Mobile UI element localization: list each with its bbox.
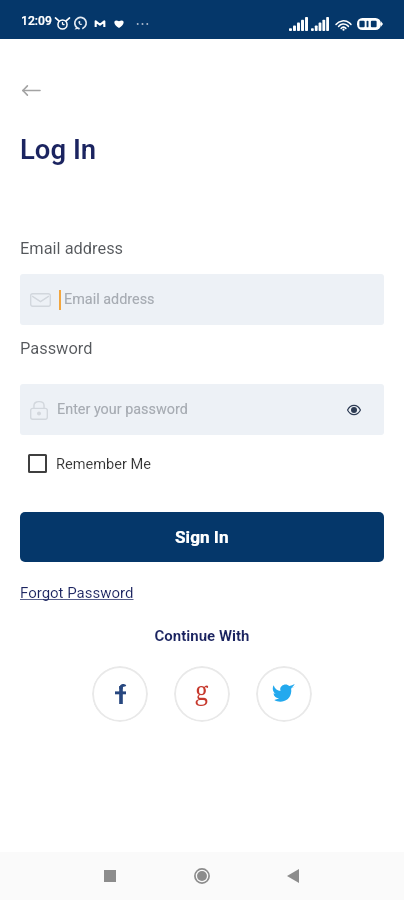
button[interactable]: Remember Me (28, 454, 152, 473)
staticText: Continue With (0, 627, 404, 645)
button[interactable]: Sign In (20, 512, 384, 562)
button[interactable]: Recent apps (88, 854, 132, 898)
button[interactable]: Back (15, 74, 47, 106)
button[interactable]: Home (180, 854, 224, 898)
staticText: Email address (20, 239, 124, 258)
button[interactable]: Forgot Password (20, 584, 134, 602)
staticText: 12:09 (21, 14, 52, 28)
staticText: Enter your password (57, 401, 188, 418)
button[interactable]: Enter your password (20, 384, 384, 435)
button[interactable]: Email address (20, 274, 384, 325)
staticText: g (195, 673, 209, 707)
staticText: Remember Me (56, 455, 152, 472)
staticText: Log In (20, 133, 97, 165)
staticText: Password (20, 339, 93, 358)
button[interactable]: Back (271, 854, 315, 898)
staticText: Sign In (175, 527, 229, 547)
button[interactable]: Show password (342, 398, 366, 422)
button[interactable]: Sign in with Twitter (256, 666, 312, 722)
button[interactable]: Sign in with Facebook (92, 666, 148, 722)
staticText: Forgot Password (20, 584, 134, 602)
button[interactable]: Sign in with Google (174, 666, 230, 722)
staticText: Email address (64, 291, 155, 308)
